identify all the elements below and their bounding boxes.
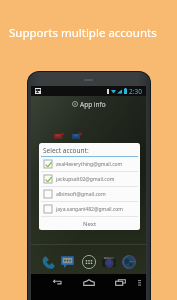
button[interactable]: jackupsalt02@gmail.com [39,172,140,186]
button[interactable]: Home [83,279,95,286]
staticText: App info [80,100,106,109]
button[interactable]: Messaging [61,255,74,268]
staticText: 2:30 [129,87,142,96]
button[interactable]: Recents [115,279,126,286]
button[interactable]: Phone [41,255,55,269]
staticText: jaya.sangani482@gmail.com [56,206,123,213]
staticText: albinsoft@gmail.com [56,191,106,198]
button[interactable]: Back [52,279,63,286]
staticText: Select account: [43,146,89,155]
button[interactable]: App info [31,99,146,109]
button[interactable]: Apps [82,255,96,269]
button[interactable]: jaya.sangani482@gmail.com [39,202,140,216]
button[interactable]: albinsoft@gmail.com [39,187,140,201]
button[interactable]: Camera [102,255,116,269]
button[interactable]: Menu [138,279,141,286]
staticText: Supports multiple accounts [9,25,157,41]
button[interactable]: Next [39,217,140,230]
staticText: jackupsalt02@gmail.com [56,176,115,183]
staticText: zeal4everything@gmail.com [56,161,123,168]
button[interactable]: Browser [122,255,136,269]
staticText: Next [83,220,97,228]
button[interactable]: zeal4everything@gmail.com [39,157,140,171]
